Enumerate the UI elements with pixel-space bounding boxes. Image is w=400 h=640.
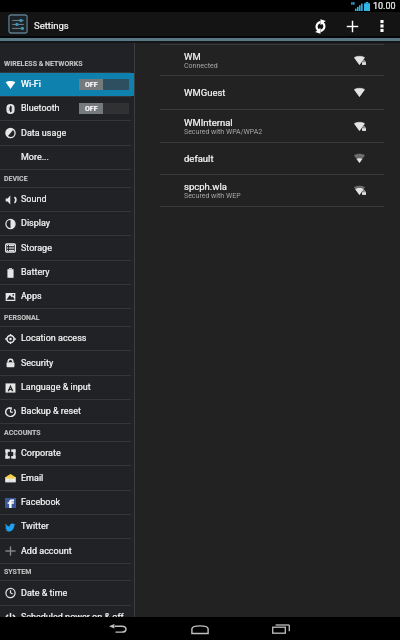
staticText: Facebook	[21, 497, 61, 508]
button[interactable]: Wi-Fi	[0, 73, 134, 96]
button[interactable]: Corporate	[0, 442, 134, 465]
staticText: Backup & reset	[21, 406, 81, 417]
button[interactable]: OFF	[79, 79, 129, 90]
staticText: Display	[21, 218, 51, 229]
staticText: Twitter	[21, 521, 49, 532]
button[interactable]: default	[135, 143, 400, 174]
staticText: SYSTEM	[4, 568, 32, 576]
button[interactable]: Add network	[336, 12, 368, 36]
staticText: Location access	[21, 333, 87, 344]
button[interactable]: spcph.wla	[135, 175, 400, 206]
button[interactable]: Language & input	[0, 376, 134, 399]
button[interactable]: Email	[0, 466, 134, 490]
button[interactable]: Date & time	[0, 581, 134, 605]
staticText: More...	[21, 152, 49, 163]
button[interactable]: Twitter	[0, 515, 134, 538]
button[interactable]: WMGuest	[135, 76, 400, 109]
button[interactable]: Add account	[0, 539, 134, 563]
button[interactable]: Battery	[0, 261, 134, 284]
staticText: Sound	[21, 194, 47, 205]
button[interactable]: Storage	[0, 236, 134, 260]
staticText: OFF	[85, 81, 98, 89]
button[interactable]: WM	[135, 45, 400, 75]
button[interactable]: OFF	[79, 103, 129, 114]
staticText: Scheduled power on & off	[21, 612, 124, 623]
staticText: Data usage	[21, 128, 67, 139]
staticText: WMGuest	[184, 87, 226, 98]
button[interactable]: Recent apps	[241, 617, 321, 640]
button[interactable]: Bluetooth	[0, 97, 134, 120]
button[interactable]: Data usage	[0, 121, 134, 145]
staticText: Email	[21, 473, 44, 484]
staticText: Bluetooth	[21, 103, 60, 114]
button[interactable]: Sync	[304, 12, 336, 36]
button[interactable]: Facebook	[0, 491, 134, 514]
staticText: Wi-Fi	[21, 79, 41, 90]
staticText: Secured with WEP	[184, 192, 241, 200]
button[interactable]: Home	[160, 617, 240, 640]
staticText: 10.00	[373, 1, 396, 12]
button[interactable]: Display	[0, 212, 134, 235]
button[interactable]: Apps	[0, 285, 134, 308]
staticText: Language & input	[21, 382, 91, 393]
staticText: Storage	[21, 243, 52, 254]
staticText: Connected	[184, 62, 218, 70]
staticText: WMInternal	[184, 117, 233, 128]
staticText: Add account	[21, 546, 72, 557]
staticText: Corporate	[21, 448, 61, 459]
button[interactable]: Backup & reset	[0, 400, 134, 423]
button[interactable]: Scheduled power on & off	[0, 606, 134, 629]
staticText: Secured with WPA/WPA2	[184, 128, 263, 136]
staticText: OFF	[85, 105, 98, 113]
button[interactable]: Back	[78, 617, 158, 640]
staticText: Battery	[21, 267, 50, 278]
staticText: Settings	[34, 20, 69, 31]
staticText: spcph.wla	[184, 181, 227, 192]
staticText: default	[184, 153, 214, 164]
staticText: Security	[21, 358, 54, 369]
staticText: WIRELESS & NETWORKS	[4, 60, 83, 68]
staticText: PERSONAL	[4, 314, 40, 322]
button[interactable]: Security	[0, 351, 134, 375]
button[interactable]: More options	[368, 12, 396, 36]
staticText: ACCOUNTS	[4, 429, 41, 437]
staticText: WM	[184, 51, 201, 62]
button[interactable]: Location access	[0, 327, 134, 350]
staticText: Apps	[21, 291, 42, 302]
button[interactable]: WMInternal	[135, 110, 400, 142]
button[interactable]: Settings	[0, 12, 75, 36]
staticText: DEVICE	[4, 175, 28, 183]
button[interactable]: More...	[0, 146, 134, 169]
button[interactable]: Sound	[0, 188, 134, 211]
staticText: Date & time	[21, 588, 68, 599]
